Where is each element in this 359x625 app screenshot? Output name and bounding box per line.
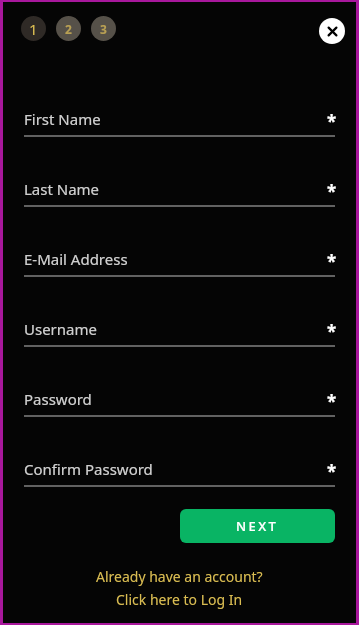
staticText: 3: [100, 21, 107, 37]
staticText: Last Name: [24, 179, 100, 199]
staticText: Username: [24, 319, 97, 339]
staticText: E-Mail Address: [24, 249, 128, 269]
button[interactable]: Already have an account?: [3, 567, 356, 609]
staticText: *: [327, 460, 337, 483]
button[interactable]: 2: [56, 16, 81, 41]
staticText: 1: [29, 19, 38, 39]
staticText: Password: [24, 389, 92, 409]
button[interactable]: E-Mail Address: [3, 246, 356, 280]
button[interactable]: Username: [3, 316, 356, 350]
button[interactable]: Close: [319, 18, 345, 44]
staticText: 2: [65, 21, 72, 37]
staticText: Confirm Password: [24, 459, 153, 479]
button[interactable]: 1: [21, 16, 46, 41]
button[interactable]: NEXT: [180, 509, 335, 543]
staticText: *: [327, 390, 337, 413]
button[interactable]: First Name: [3, 106, 356, 140]
staticText: Already have an account?: [96, 567, 263, 586]
button[interactable]: 3: [91, 16, 116, 41]
staticText: Click here to Log In: [116, 590, 243, 609]
staticText: *: [327, 180, 337, 203]
staticText: NEXT: [236, 517, 279, 535]
staticText: First Name: [24, 109, 101, 129]
button[interactable]: Last Name: [3, 176, 356, 210]
button[interactable]: Password: [3, 386, 356, 420]
staticText: *: [327, 320, 337, 343]
staticText: *: [327, 110, 337, 133]
staticText: *: [327, 250, 337, 273]
button[interactable]: Confirm Password: [3, 456, 356, 490]
